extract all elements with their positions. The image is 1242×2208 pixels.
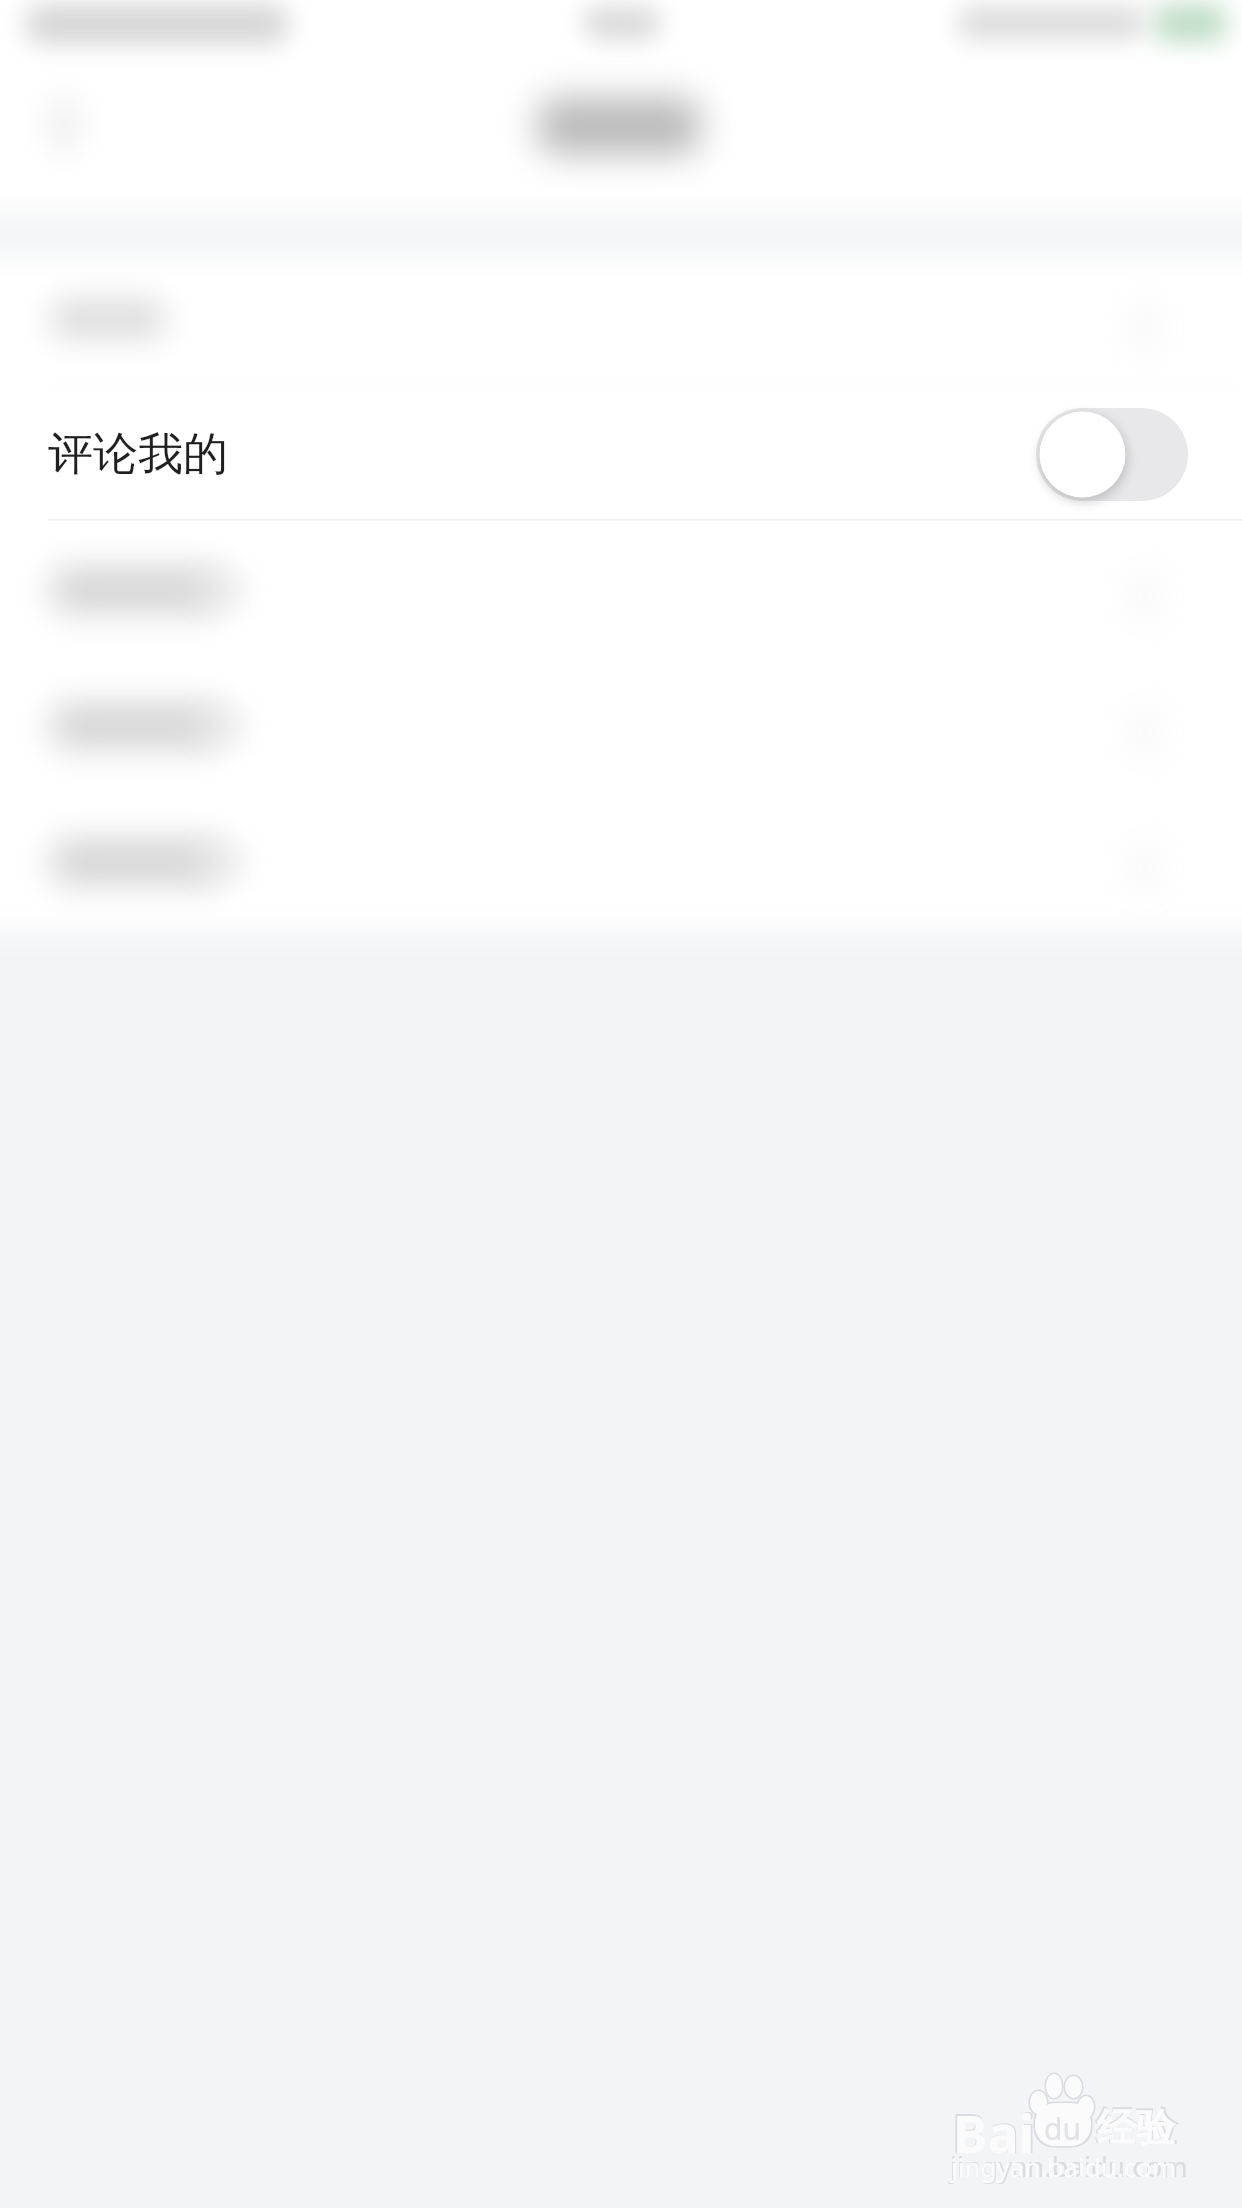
button[interactable] [0, 657, 1242, 793]
button[interactable] [0, 521, 1242, 657]
staticText: du [1044, 2108, 1081, 2149]
button[interactable] [0, 793, 1242, 929]
staticText: 经验 [1097, 2103, 1175, 2152]
staticText: 经验 [1095, 2101, 1178, 2153]
staticText: jingyan.baidu.com [951, 2149, 1177, 2184]
staticText: Bai [953, 2097, 1035, 2168]
button[interactable]: Comments on mine, off [1036, 408, 1188, 501]
staticText: jingyan.baidu.com [950, 2148, 1188, 2185]
button[interactable] [0, 260, 1242, 388]
staticText: 评论我的 [48, 426, 228, 483]
button[interactable]: 评论我的 [0, 388, 1242, 521]
staticText: Bai [951, 2095, 1037, 2169]
